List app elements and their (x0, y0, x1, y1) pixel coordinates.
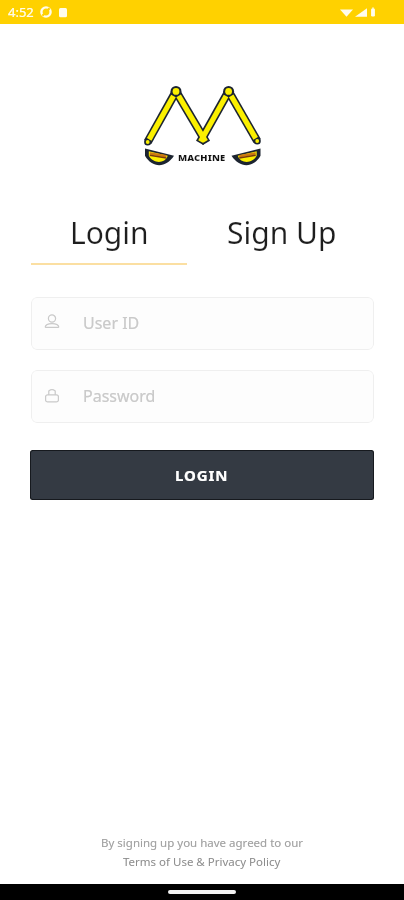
button[interactable]: User ID (31, 297, 374, 350)
button[interactable]: LOGIN (30, 450, 374, 500)
staticText: 4:52 (8, 3, 34, 21)
staticText: By signing up you have agreed to our (101, 835, 304, 851)
staticText: Password (83, 385, 156, 407)
staticText: User ID (83, 312, 140, 334)
button[interactable]: Login (31, 203, 187, 261)
staticText: Login (70, 212, 149, 253)
button[interactable]: Password (31, 370, 374, 423)
staticText: LOGIN (175, 465, 229, 485)
button[interactable]: Sign Up (204, 203, 360, 261)
staticText: MACHINE (178, 151, 226, 164)
button[interactable]: Terms of Use & Privacy Policy (123, 854, 281, 870)
staticText: Terms of Use & Privacy Policy (123, 854, 281, 870)
staticText: Sign Up (227, 212, 337, 253)
